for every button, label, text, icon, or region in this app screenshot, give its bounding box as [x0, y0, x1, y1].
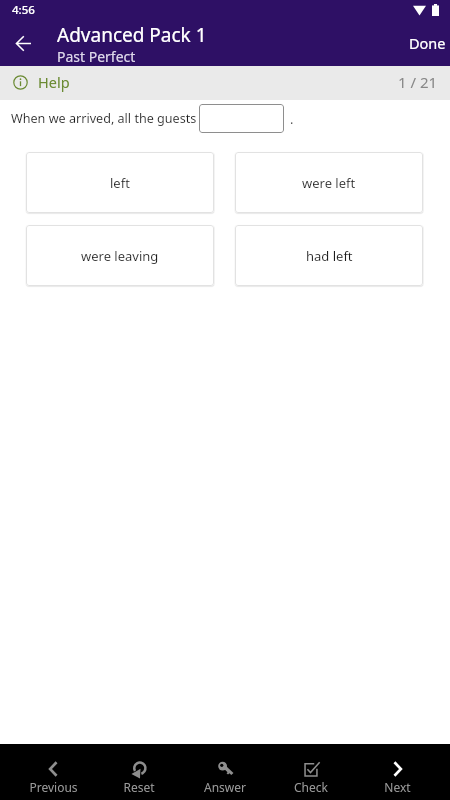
staticText: Answer [204, 779, 246, 795]
button[interactable]: Check [268, 744, 354, 800]
button[interactable]: Answer [182, 744, 268, 800]
staticText: 1 / 21 [398, 72, 438, 92]
button[interactable]: Next [354, 744, 440, 800]
button[interactable]: Help [0, 72, 82, 95]
staticText: Help [38, 72, 70, 92]
staticText: Previous [29, 779, 78, 795]
staticText: were leaving [81, 247, 159, 265]
staticText: Next [384, 779, 411, 795]
button[interactable]: had left [235, 225, 423, 286]
staticText: were left [302, 174, 356, 192]
staticText: 4:56 [12, 2, 35, 18]
staticText: Check [294, 779, 328, 795]
button[interactable]: were leaving [26, 225, 214, 286]
staticText: Past Perfect [57, 47, 136, 66]
button[interactable]: Back [0, 21, 46, 66]
staticText: had left [306, 247, 353, 265]
staticText: Done [409, 33, 446, 53]
staticText: . [290, 110, 294, 127]
button[interactable] [199, 104, 284, 133]
staticText: Reset [123, 779, 155, 795]
staticText: left [110, 174, 130, 192]
button[interactable]: Previous [10, 744, 96, 800]
button[interactable]: Reset [96, 744, 182, 800]
staticText: Advanced Pack 1 [57, 22, 207, 48]
button[interactable]: were left [235, 152, 423, 213]
button[interactable]: left [26, 152, 214, 213]
button[interactable]: Done [397, 21, 450, 66]
staticText: When we arrived, all the guests [11, 110, 197, 127]
